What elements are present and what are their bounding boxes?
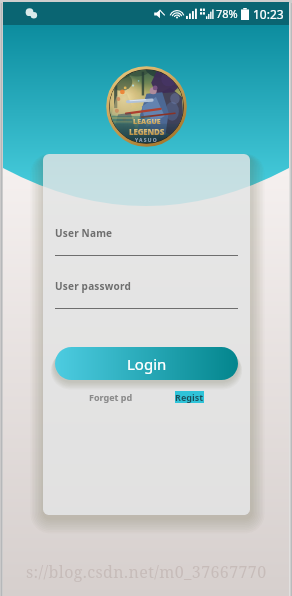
staticText: Regist [175,391,204,403]
button[interactable]: Regist [175,391,204,403]
staticText: 78% [216,6,238,21]
staticText: LEGENDS [129,126,165,137]
staticText: LEAGUE [133,117,161,127]
staticText: 10:23 [253,6,284,22]
other: Message [25,7,38,20]
staticText: User Name [55,226,113,240]
staticText: Login [127,354,167,374]
button[interactable]: Forget pd [89,391,133,403]
staticText: User password [55,279,131,293]
button[interactable]: Login [55,347,238,380]
staticText: YASUO [135,137,158,144]
staticText: s://blog.csdn.net/m0_37667770 [26,561,267,583]
